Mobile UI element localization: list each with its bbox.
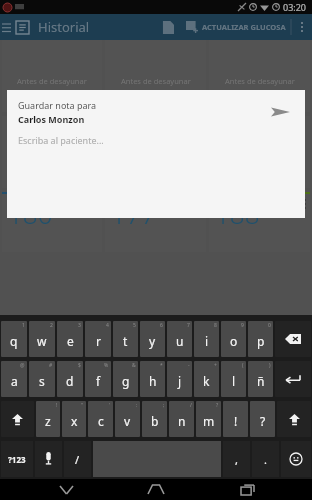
button[interactable]: ' <box>88 401 113 437</box>
button[interactable]: 180 <box>2 192 102 252</box>
button[interactable]: ! <box>36 401 60 437</box>
button[interactable]: 177 <box>105 192 206 252</box>
button[interactable]: Hide keyboard <box>41 479 91 500</box>
button[interactable]: ! <box>223 401 248 437</box>
staticText: / <box>75 452 80 467</box>
button[interactable]: " <box>62 401 86 437</box>
button[interactable]: @ <box>1 361 27 397</box>
staticText: a <box>11 373 18 389</box>
staticText: m <box>203 413 215 429</box>
staticText: Guardar nota para <box>18 99 97 111</box>
staticText: 177 <box>111 196 156 231</box>
button[interactable]: Home <box>131 479 181 500</box>
staticText: Escriba al paciente... <box>18 134 104 146</box>
staticText: 7 <box>187 322 190 329</box>
button[interactable]: 54 <box>2 40 102 112</box>
button[interactable]: $ <box>57 361 83 397</box>
button[interactable]: ? <box>250 401 275 437</box>
button[interactable]: Escriba al paciente... <box>18 131 294 149</box>
staticText: 54 <box>37 18 67 38</box>
button[interactable]: 3 <box>57 321 83 357</box>
button[interactable]: 5 <box>113 321 138 357</box>
staticText: Antes de desayunar <box>121 76 191 86</box>
staticText: l <box>232 373 236 389</box>
staticText: " <box>81 402 84 409</box>
button[interactable]: . <box>252 441 279 477</box>
staticText: i <box>205 333 209 349</box>
button[interactable]: : <box>115 401 140 437</box>
button[interactable]: ACTUALIZAR GLUCOSA <box>186 14 286 40</box>
staticText: * <box>160 362 163 369</box>
button[interactable]: * <box>140 361 165 397</box>
button[interactable]: 2 <box>29 321 55 357</box>
staticText: ? <box>260 413 266 429</box>
staticText: 6 <box>160 322 163 329</box>
staticText: 4 <box>106 322 109 329</box>
staticText: + <box>214 362 217 369</box>
button[interactable]: 95 <box>209 116 310 188</box>
button[interactable]: Send <box>263 99 297 125</box>
staticText: Antes de desayunar <box>17 76 87 86</box>
button[interactable]: / <box>64 441 91 477</box>
button[interactable]: 4 <box>85 321 111 357</box>
button[interactable]: 7 <box>167 321 192 357</box>
button[interactable]: Shift <box>1 401 34 437</box>
button[interactable]: Emoji <box>281 441 311 477</box>
button[interactable]: Voice input <box>35 441 62 477</box>
button[interactable]: - <box>167 361 192 397</box>
button[interactable]: Recents <box>222 479 272 500</box>
button[interactable]: 1 <box>1 321 27 357</box>
staticText: 3 <box>78 322 81 329</box>
button[interactable]: Shift <box>277 401 311 437</box>
staticText: ñ <box>257 373 265 389</box>
button[interactable]: ? <box>196 401 221 437</box>
staticText: . <box>264 452 267 467</box>
staticText: ! <box>56 402 58 409</box>
button[interactable]: # <box>29 361 55 397</box>
button[interactable]: 9 <box>221 321 246 357</box>
button[interactable]: % <box>85 361 111 397</box>
button[interactable]: More options <box>292 14 312 40</box>
button[interactable]: 85 <box>2 116 102 188</box>
staticText: y <box>149 333 156 349</box>
staticText: 03:20 <box>283 1 307 13</box>
staticText: 2 <box>50 322 53 329</box>
button[interactable]: App icon <box>12 17 32 37</box>
button[interactable]: ) <box>248 361 273 397</box>
button[interactable]: ?123 <box>1 441 33 477</box>
staticText: ( <box>242 362 244 369</box>
staticText: ACTUALIZAR GLUCOSA <box>202 22 286 32</box>
button[interactable]: 0 <box>248 321 273 357</box>
button[interactable]: ( <box>221 361 246 397</box>
staticText: 5 <box>133 322 136 329</box>
button[interactable]: Export <box>152 14 182 40</box>
button[interactable]: + <box>194 361 219 397</box>
staticText: 1 <box>22 322 25 329</box>
button[interactable]: / <box>169 401 194 437</box>
button[interactable]: 6 <box>140 321 165 357</box>
button[interactable]: Backspace <box>275 321 311 357</box>
staticText: 0 <box>268 322 271 329</box>
button[interactable]: 500 <box>105 40 206 112</box>
button[interactable]: 8 <box>194 321 219 357</box>
button[interactable]: 188 <box>209 192 310 252</box>
staticText: , <box>235 452 238 467</box>
staticText: ) <box>269 362 271 369</box>
button[interactable]: Menu <box>0 14 12 40</box>
staticText: 188 <box>215 196 260 231</box>
button[interactable]: 300 <box>209 40 310 112</box>
button[interactable]: ; <box>142 401 167 437</box>
staticText: t <box>123 333 128 349</box>
staticText: # <box>49 362 53 369</box>
staticText: ?123 <box>8 454 26 465</box>
button[interactable]: Enter <box>275 361 311 397</box>
button[interactable]: & <box>113 361 138 397</box>
button[interactable]: , <box>223 441 250 477</box>
staticText: 85 <box>37 94 67 114</box>
